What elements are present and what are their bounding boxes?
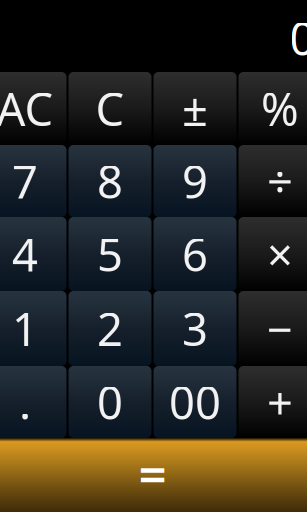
staticText: % [261, 78, 299, 139]
button[interactable]: 1 [0, 291, 66, 366]
staticText: = [138, 440, 166, 506]
staticText: ÷ [267, 151, 293, 211]
staticText: 7 [12, 151, 38, 211]
staticText: 0 [97, 372, 123, 432]
button[interactable]: 4 [0, 217, 66, 291]
staticText: 9 [182, 151, 208, 211]
staticText: − [267, 298, 293, 359]
button[interactable]: − [238, 291, 307, 366]
button[interactable]: 0 [68, 366, 151, 438]
button[interactable]: 2 [68, 291, 151, 366]
button[interactable]: 3 [153, 291, 236, 366]
button[interactable]: . [0, 366, 66, 438]
button[interactable]: 00 [153, 366, 236, 438]
staticText: ± [182, 78, 208, 139]
button[interactable]: AC [0, 72, 66, 145]
staticText: 1 [12, 298, 38, 359]
staticText: 8 [97, 151, 123, 211]
staticText: 4 [12, 224, 38, 284]
staticText: 2 [97, 298, 123, 359]
button[interactable]: % [238, 72, 307, 145]
staticText: 3 [182, 298, 208, 359]
staticText: 5 [97, 224, 123, 284]
button[interactable]: 8 [68, 145, 151, 217]
button[interactable]: C [68, 72, 151, 145]
staticText: C [95, 78, 124, 139]
button[interactable]: × [238, 217, 307, 291]
staticText: AC [0, 78, 53, 139]
button[interactable]: + [238, 366, 307, 438]
staticText: 6 [182, 224, 208, 284]
button[interactable]: 5 [68, 217, 151, 291]
button[interactable]: 7 [0, 145, 66, 217]
staticText: × [267, 224, 293, 284]
button[interactable]: 9 [153, 145, 236, 217]
staticText: + [267, 372, 293, 432]
button[interactable]: ± [153, 72, 236, 145]
staticText: 0 [289, 8, 307, 68]
staticText: . [19, 372, 31, 432]
button[interactable]: = [0, 438, 307, 512]
staticText: 00 [169, 372, 221, 432]
button[interactable]: 6 [153, 217, 236, 291]
button[interactable]: ÷ [238, 145, 307, 217]
